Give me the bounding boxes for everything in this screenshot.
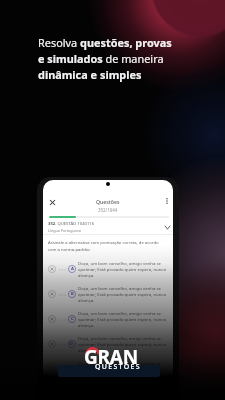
- staticText: Assinale a alternativa com pontuação cor…: [48, 240, 159, 252]
- button[interactable]: Responder: [58, 365, 160, 377]
- staticText: 352. QUESTÃO 1040116: [48, 221, 95, 227]
- button[interactable]: Mais opções: [160, 194, 173, 208]
- button[interactable]: Expandir: [161, 221, 173, 233]
- staticText: Doça, um bom conselho, amigo venha se qu…: [78, 260, 166, 278]
- staticText: 352/1644: [98, 207, 118, 213]
- staticText: A: [71, 266, 74, 272]
- staticText: Doça, um bom conselho, amigo venha se qu…: [78, 285, 166, 303]
- staticText: GRAN: [84, 344, 139, 370]
- staticText: D: [70, 341, 74, 347]
- button[interactable]: D: [43, 333, 173, 356]
- button[interactable]: Fechar: [45, 195, 59, 209]
- staticText: C: [71, 316, 74, 322]
- staticText: QUESTÕES: [95, 362, 141, 372]
- staticText: Doça, um bom conselho, amigo venha se qu…: [78, 335, 166, 353]
- staticText: B: [71, 291, 74, 297]
- button[interactable]: A: [43, 258, 173, 281]
- button[interactable]: C: [43, 308, 173, 331]
- button[interactable]: E: [43, 358, 173, 381]
- staticText: Língua Portuguesa: [48, 228, 81, 233]
- staticText: Resolva questões, provas e simulados de …: [38, 35, 172, 82]
- button[interactable]: B: [43, 283, 173, 306]
- staticText: Questões: [96, 198, 120, 205]
- staticText: Doça, um bom conselho, amigo venha se qu…: [78, 360, 166, 378]
- staticText: Doça, um bom conselho, amigo venha se qu…: [78, 310, 166, 328]
